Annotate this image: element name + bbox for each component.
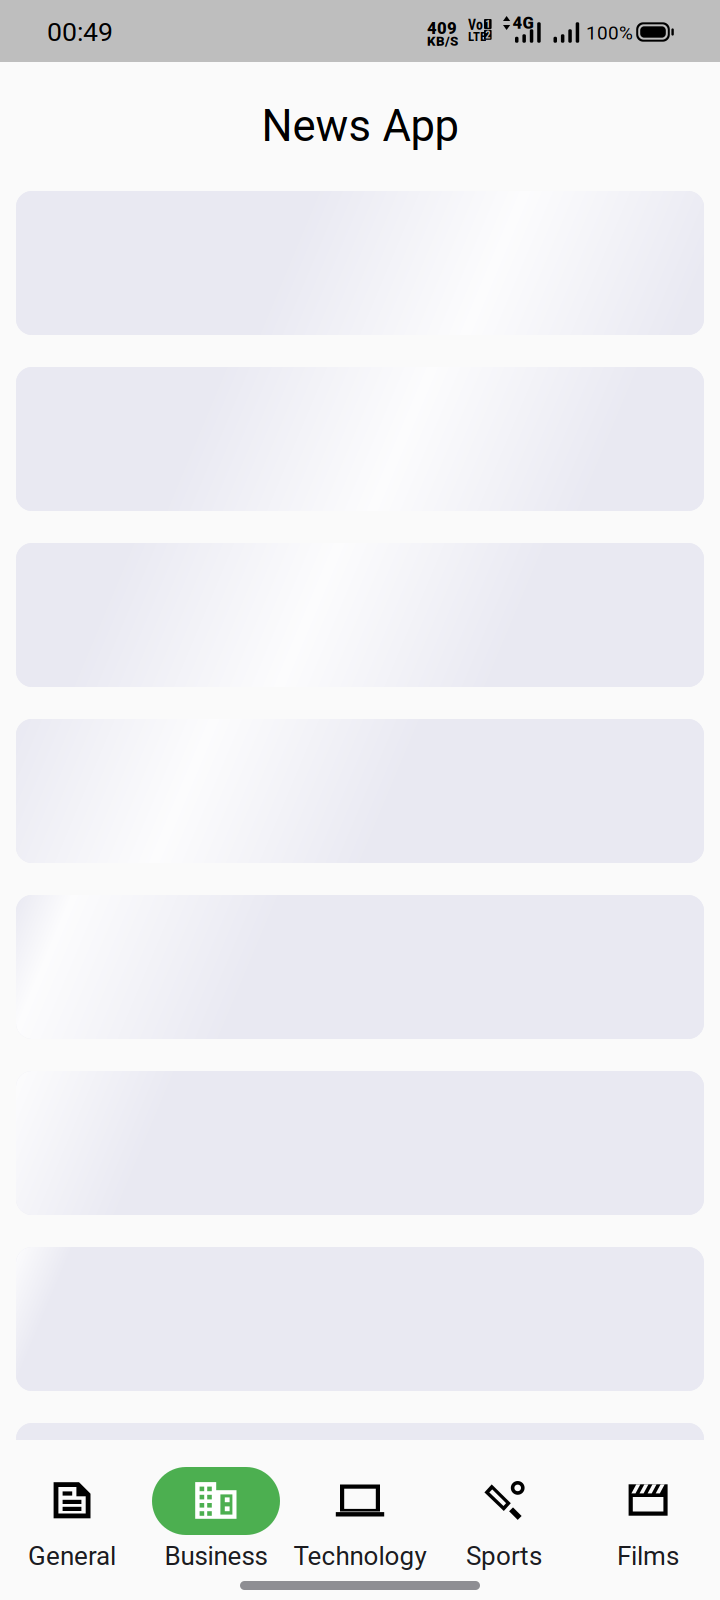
staticText: KB/S	[427, 33, 458, 49]
staticText: 100%	[586, 22, 633, 44]
staticText: Sports	[466, 1541, 542, 1571]
staticText: 2	[485, 28, 490, 41]
staticText: 4G	[512, 13, 533, 33]
staticText: News App	[261, 100, 458, 152]
staticText: Business	[164, 1541, 267, 1571]
button[interactable]: Films	[576, 1467, 720, 1570]
button[interactable]: General	[0, 1467, 144, 1570]
staticText: Films	[617, 1541, 679, 1571]
button[interactable]: Sports	[432, 1467, 576, 1570]
staticText: 00:49	[47, 16, 113, 48]
staticText: 1	[485, 18, 490, 30]
staticText: 409	[427, 18, 457, 38]
button[interactable]: Technology	[288, 1467, 432, 1570]
staticText: General	[28, 1541, 116, 1571]
staticText: LTE	[468, 29, 486, 44]
staticText: Vo	[468, 17, 483, 33]
button[interactable]: Business	[144, 1467, 288, 1570]
staticText: Technology	[293, 1541, 426, 1571]
